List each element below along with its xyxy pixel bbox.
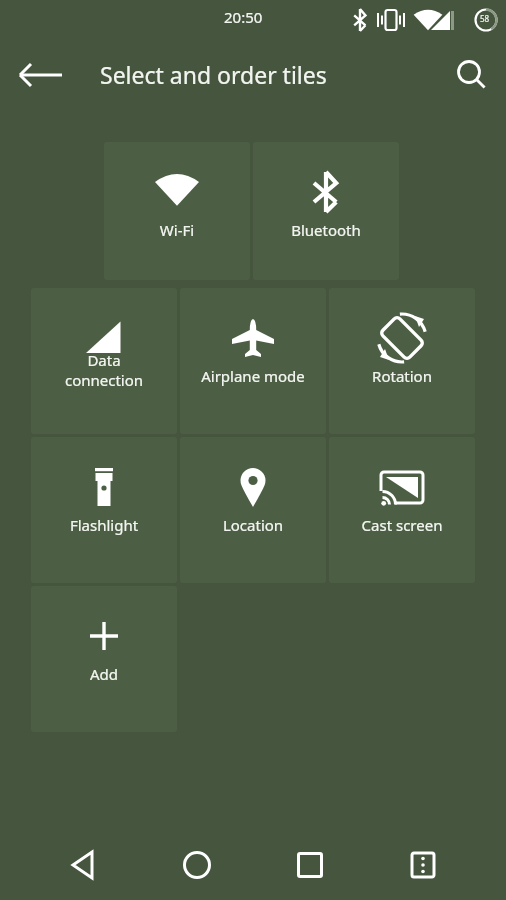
- staticText: Select and order tiles: [100, 59, 327, 90]
- button[interactable]: Flashlight: [31, 437, 177, 583]
- button[interactable]: Rotation: [329, 288, 475, 434]
- staticText: Rotation: [332, 366, 472, 386]
- button[interactable]: Search: [445, 48, 497, 100]
- button[interactable]: Bluetooth: [253, 142, 399, 280]
- staticText: Data connection: [34, 350, 174, 390]
- button[interactable]: Data connection: [31, 288, 177, 434]
- staticText: Airplane mode: [183, 366, 323, 386]
- button[interactable]: Location: [180, 437, 326, 583]
- button[interactable]: Cast screen: [329, 437, 475, 583]
- staticText: Location: [183, 515, 323, 535]
- button[interactable]: Recent apps: [282, 826, 338, 900]
- button[interactable]: Home: [169, 826, 225, 900]
- button[interactable]: Menu: [395, 826, 451, 900]
- staticText: Flashlight: [34, 515, 174, 535]
- staticText: Wi-Fi: [107, 220, 247, 240]
- button[interactable]: Airplane mode: [180, 288, 326, 434]
- staticText: Add: [34, 664, 174, 684]
- staticText: 20:50: [224, 7, 263, 27]
- button[interactable]: Back: [14, 48, 68, 102]
- staticText: Cast screen: [332, 515, 472, 535]
- button[interactable]: Back: [56, 826, 112, 900]
- button[interactable]: Wi-Fi: [104, 142, 250, 280]
- staticText: Bluetooth: [256, 220, 396, 240]
- staticText: 58: [480, 13, 490, 24]
- button[interactable]: Add: [31, 586, 177, 732]
